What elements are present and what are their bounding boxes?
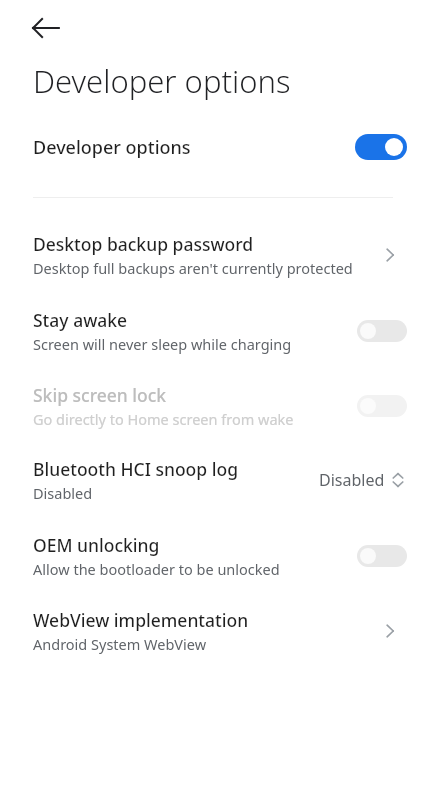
button[interactable]: WebView implementation [0, 608, 427, 654]
button[interactable]: Open [373, 614, 407, 648]
button[interactable]: OEM unlocking [0, 533, 427, 579]
button[interactable]: Developer options [0, 124, 427, 170]
staticText: Go directly to Home screen from wake [33, 409, 294, 429]
staticText: Bluetooth HCI snoop log [33, 457, 238, 481]
staticText: Android System WebView [33, 634, 207, 654]
staticText: Disabled [33, 483, 93, 503]
staticText: WebView implementation [33, 608, 249, 632]
button[interactable]: Toggle off [357, 545, 407, 567]
staticText: Stay awake [33, 308, 128, 332]
button[interactable]: Toggle off [357, 320, 407, 342]
staticText: Disabled [319, 469, 385, 491]
button[interactable]: Back [22, 4, 70, 52]
button[interactable]: Skip screen lock [0, 383, 427, 429]
button[interactable]: Stay awake [0, 308, 427, 354]
button[interactable]: Bluetooth HCI snoop log [0, 457, 427, 503]
staticText: Developer options [33, 60, 291, 102]
button[interactable]: Toggle on [355, 134, 407, 160]
staticText: Desktop full backups aren't currently pr… [33, 258, 353, 278]
staticText: Desktop backup password [33, 232, 254, 256]
staticText: Screen will never sleep while charging [33, 334, 292, 354]
staticText: OEM unlocking [33, 533, 160, 557]
button[interactable]: Open [373, 238, 407, 272]
button[interactable]: Toggle off [357, 395, 407, 417]
staticText: Allow the bootloader to be unlocked [33, 559, 280, 579]
staticText: Skip screen lock [33, 383, 167, 407]
staticText: Developer options [33, 135, 355, 160]
button[interactable]: Desktop backup password [0, 232, 427, 278]
